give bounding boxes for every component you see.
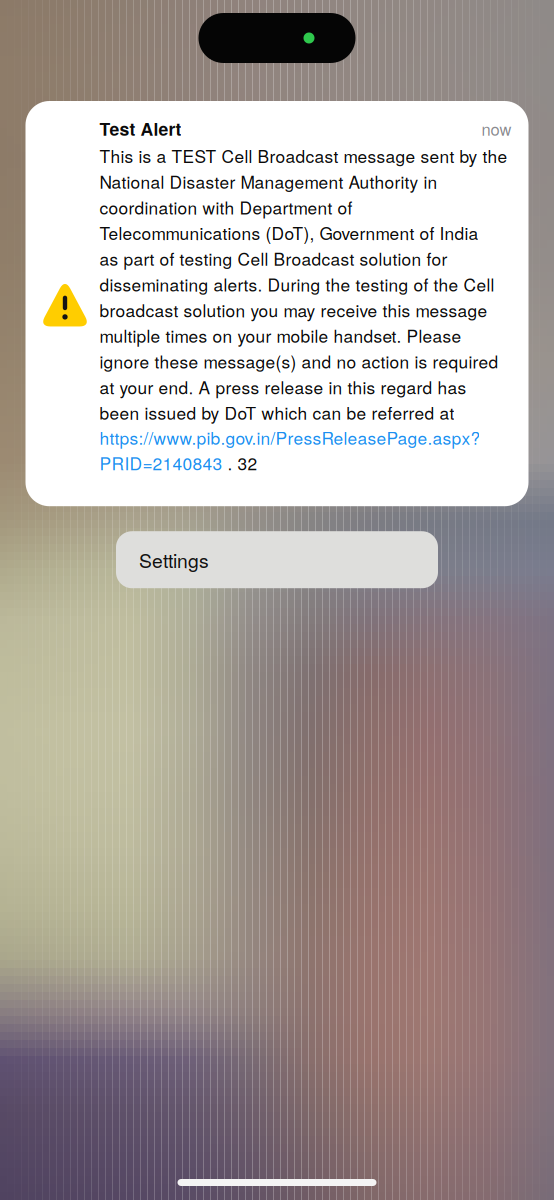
- staticText: now: [481, 117, 511, 140]
- staticText: https://www.pib.gov.in/PressReleasePage.…: [99, 425, 480, 449]
- staticText: Test Alert: [99, 116, 181, 141]
- staticText: This is a TEST Cell Broadcast message se…: [99, 143, 507, 425]
- button[interactable]: Settings: [116, 531, 438, 588]
- staticText: PRID=2140843: [99, 450, 222, 475]
- staticText: Settings: [139, 546, 209, 574]
- staticText: . 32: [222, 450, 257, 475]
